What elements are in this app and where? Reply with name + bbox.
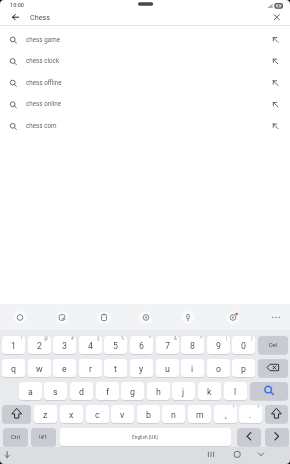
staticText: e [62, 364, 67, 374]
button[interactable]: 4 [79, 336, 102, 355]
button[interactable]: o [207, 359, 230, 378]
staticText: 7 [165, 341, 170, 351]
button[interactable]: Del [258, 336, 288, 355]
button[interactable]: c [86, 405, 109, 424]
button[interactable]: l [224, 382, 247, 401]
button[interactable]: English (UK) [60, 428, 231, 447]
staticText: . [249, 410, 252, 420]
button[interactable]: x [60, 405, 83, 424]
button[interactable] [265, 428, 289, 447]
staticText: w [36, 364, 43, 374]
button[interactable]: 9 [207, 336, 230, 355]
staticText: chess offline [26, 79, 62, 86]
staticText: o [216, 364, 222, 374]
button[interactable]: r [79, 359, 102, 378]
staticText: ( [226, 336, 228, 341]
staticText: !#1 [39, 434, 48, 441]
button[interactable]: e [53, 359, 76, 378]
staticText: # [71, 336, 74, 341]
button[interactable]: p [232, 359, 255, 378]
button[interactable]: 5 [104, 336, 127, 355]
staticText: p [241, 364, 246, 374]
staticText: f [106, 387, 110, 397]
staticText: d [79, 387, 84, 397]
button[interactable] [0, 94, 290, 116]
button[interactable]: 6 [130, 336, 153, 355]
staticText: chess online [26, 100, 62, 107]
button[interactable]: m [188, 405, 211, 424]
staticText: 2 [37, 341, 42, 351]
staticText: b [146, 410, 151, 420]
staticText: m [196, 410, 204, 420]
staticText: @ [44, 336, 49, 341]
button[interactable]: 3 [53, 336, 76, 355]
button[interactable]: k [198, 382, 221, 401]
staticText: y [139, 364, 144, 374]
staticText: s [53, 387, 58, 397]
staticText: j [182, 387, 185, 397]
staticText: u [165, 364, 170, 374]
button[interactable] [0, 8, 290, 25]
button[interactable] [265, 405, 288, 424]
staticText: v [120, 410, 125, 420]
staticText: q [11, 364, 16, 374]
button[interactable]: s [44, 382, 67, 401]
button[interactable] [0, 116, 290, 138]
button[interactable]: a [19, 382, 42, 401]
staticText: n [171, 410, 176, 420]
button[interactable]: i [181, 359, 204, 378]
staticText: , [225, 410, 227, 420]
button[interactable]: g [121, 382, 144, 401]
staticText: % [121, 336, 125, 341]
button[interactable]: j [172, 382, 195, 401]
staticText: z [43, 410, 48, 420]
staticText: 5 [113, 341, 118, 351]
button[interactable]: 0 [232, 336, 255, 355]
staticText: ! [21, 336, 23, 341]
staticText: h [156, 387, 161, 397]
button[interactable]: , [214, 405, 237, 424]
staticText: 1 [11, 341, 16, 351]
staticText: 0 [241, 341, 246, 351]
button[interactable]: d [70, 382, 93, 401]
button[interactable]: b [137, 405, 160, 424]
staticText: 10:00 [10, 2, 24, 8]
button[interactable]: u [156, 359, 179, 378]
staticText: chess game [26, 36, 60, 43]
button[interactable] [250, 382, 288, 401]
button[interactable]: . [239, 405, 262, 424]
button[interactable]: z [34, 405, 57, 424]
staticText: Ctrl [11, 434, 21, 441]
button[interactable]: v [111, 405, 134, 424]
button[interactable]: 7 [156, 336, 179, 355]
button[interactable]: !#1 [31, 428, 56, 447]
staticText: ? [257, 405, 260, 410]
button[interactable]: h [147, 382, 170, 401]
button[interactable] [0, 73, 290, 95]
button[interactable] [2, 405, 31, 424]
button[interactable] [237, 428, 261, 447]
button[interactable]: 8 [181, 336, 204, 355]
staticText: r [89, 364, 92, 374]
button[interactable]: w [28, 359, 51, 378]
button[interactable]: n [162, 405, 185, 424]
staticText: g [130, 387, 135, 397]
staticText: x [69, 410, 74, 420]
staticText: ! [233, 405, 235, 410]
staticText: chess com [26, 122, 57, 129]
button[interactable]: Ctrl [3, 428, 28, 447]
staticText: c [95, 410, 100, 420]
button[interactable]: 2 [28, 336, 51, 355]
button[interactable]: q [2, 359, 25, 378]
button[interactable] [258, 359, 288, 378]
staticText: a [28, 387, 33, 397]
button[interactable]: f [96, 382, 119, 401]
button[interactable]: 1 [2, 336, 25, 355]
button[interactable] [0, 30, 290, 52]
staticText: 9 [216, 341, 221, 351]
button[interactable]: t [104, 359, 127, 378]
staticText: 3 [62, 341, 67, 351]
staticText: 6 [139, 341, 144, 351]
button[interactable]: y [130, 359, 153, 378]
button[interactable] [0, 51, 290, 73]
